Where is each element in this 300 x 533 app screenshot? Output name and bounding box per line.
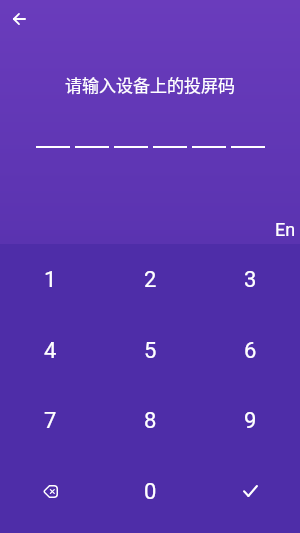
staticText: 5: [144, 338, 157, 364]
staticText: 7: [44, 408, 57, 434]
button[interactable]: 6: [200, 315, 300, 386]
button[interactable]: 2: [100, 244, 200, 315]
button[interactable]: 4: [0, 315, 100, 386]
button[interactable]: 7: [0, 385, 100, 456]
button[interactable]: 9: [200, 385, 300, 456]
staticText: 9: [244, 408, 257, 434]
staticText: En: [275, 219, 296, 240]
button[interactable]: 8: [100, 385, 200, 456]
button[interactable]: 3: [200, 244, 300, 315]
staticText: 4: [44, 338, 57, 364]
button[interactable]: Confirm: [200, 456, 300, 527]
staticText: 3: [244, 267, 257, 293]
button[interactable]: Backspace: [0, 456, 100, 527]
staticText: 2: [144, 267, 157, 293]
other: Backspace: [35, 477, 65, 507]
staticText: 1: [44, 267, 57, 293]
button[interactable]: 5: [100, 315, 200, 386]
button[interactable]: En: [273, 217, 298, 242]
button[interactable]: 1: [0, 244, 100, 315]
button[interactable]: Back: [3, 3, 35, 35]
button[interactable]: 0: [100, 456, 200, 527]
other: Confirm: [235, 477, 265, 507]
staticText: 请输入设备上的投屏码: [65, 72, 235, 97]
staticText: 8: [144, 408, 157, 434]
staticText: 6: [244, 338, 257, 364]
staticText: 0: [144, 479, 157, 505]
